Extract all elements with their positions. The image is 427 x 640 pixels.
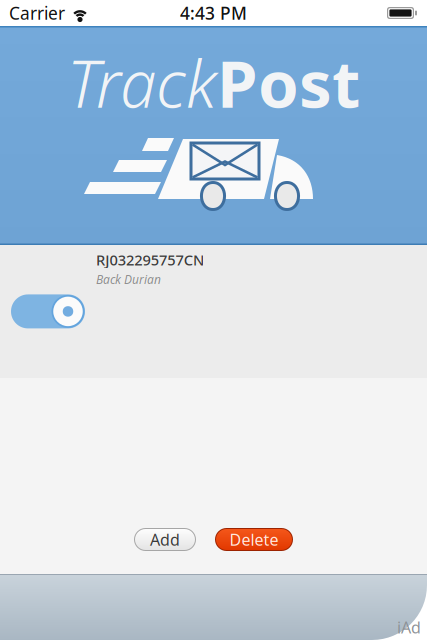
button[interactable]: Add [134, 528, 196, 551]
button[interactable]: Tracking enabled [11, 294, 85, 328]
staticText: Post [217, 39, 360, 126]
staticText: Delete [229, 529, 278, 550]
button[interactable]: iAd advertisement [0, 574, 427, 640]
staticText: 4:43 PM [180, 1, 247, 24]
staticText: iAd [397, 617, 421, 638]
button[interactable]: Delete [215, 528, 293, 551]
staticText: Add [150, 529, 180, 550]
staticText: Back Durian [96, 271, 161, 287]
staticText: Track [67, 39, 217, 126]
staticText: RJ032295757CN [96, 250, 204, 269]
staticText: Carrier [9, 1, 65, 24]
